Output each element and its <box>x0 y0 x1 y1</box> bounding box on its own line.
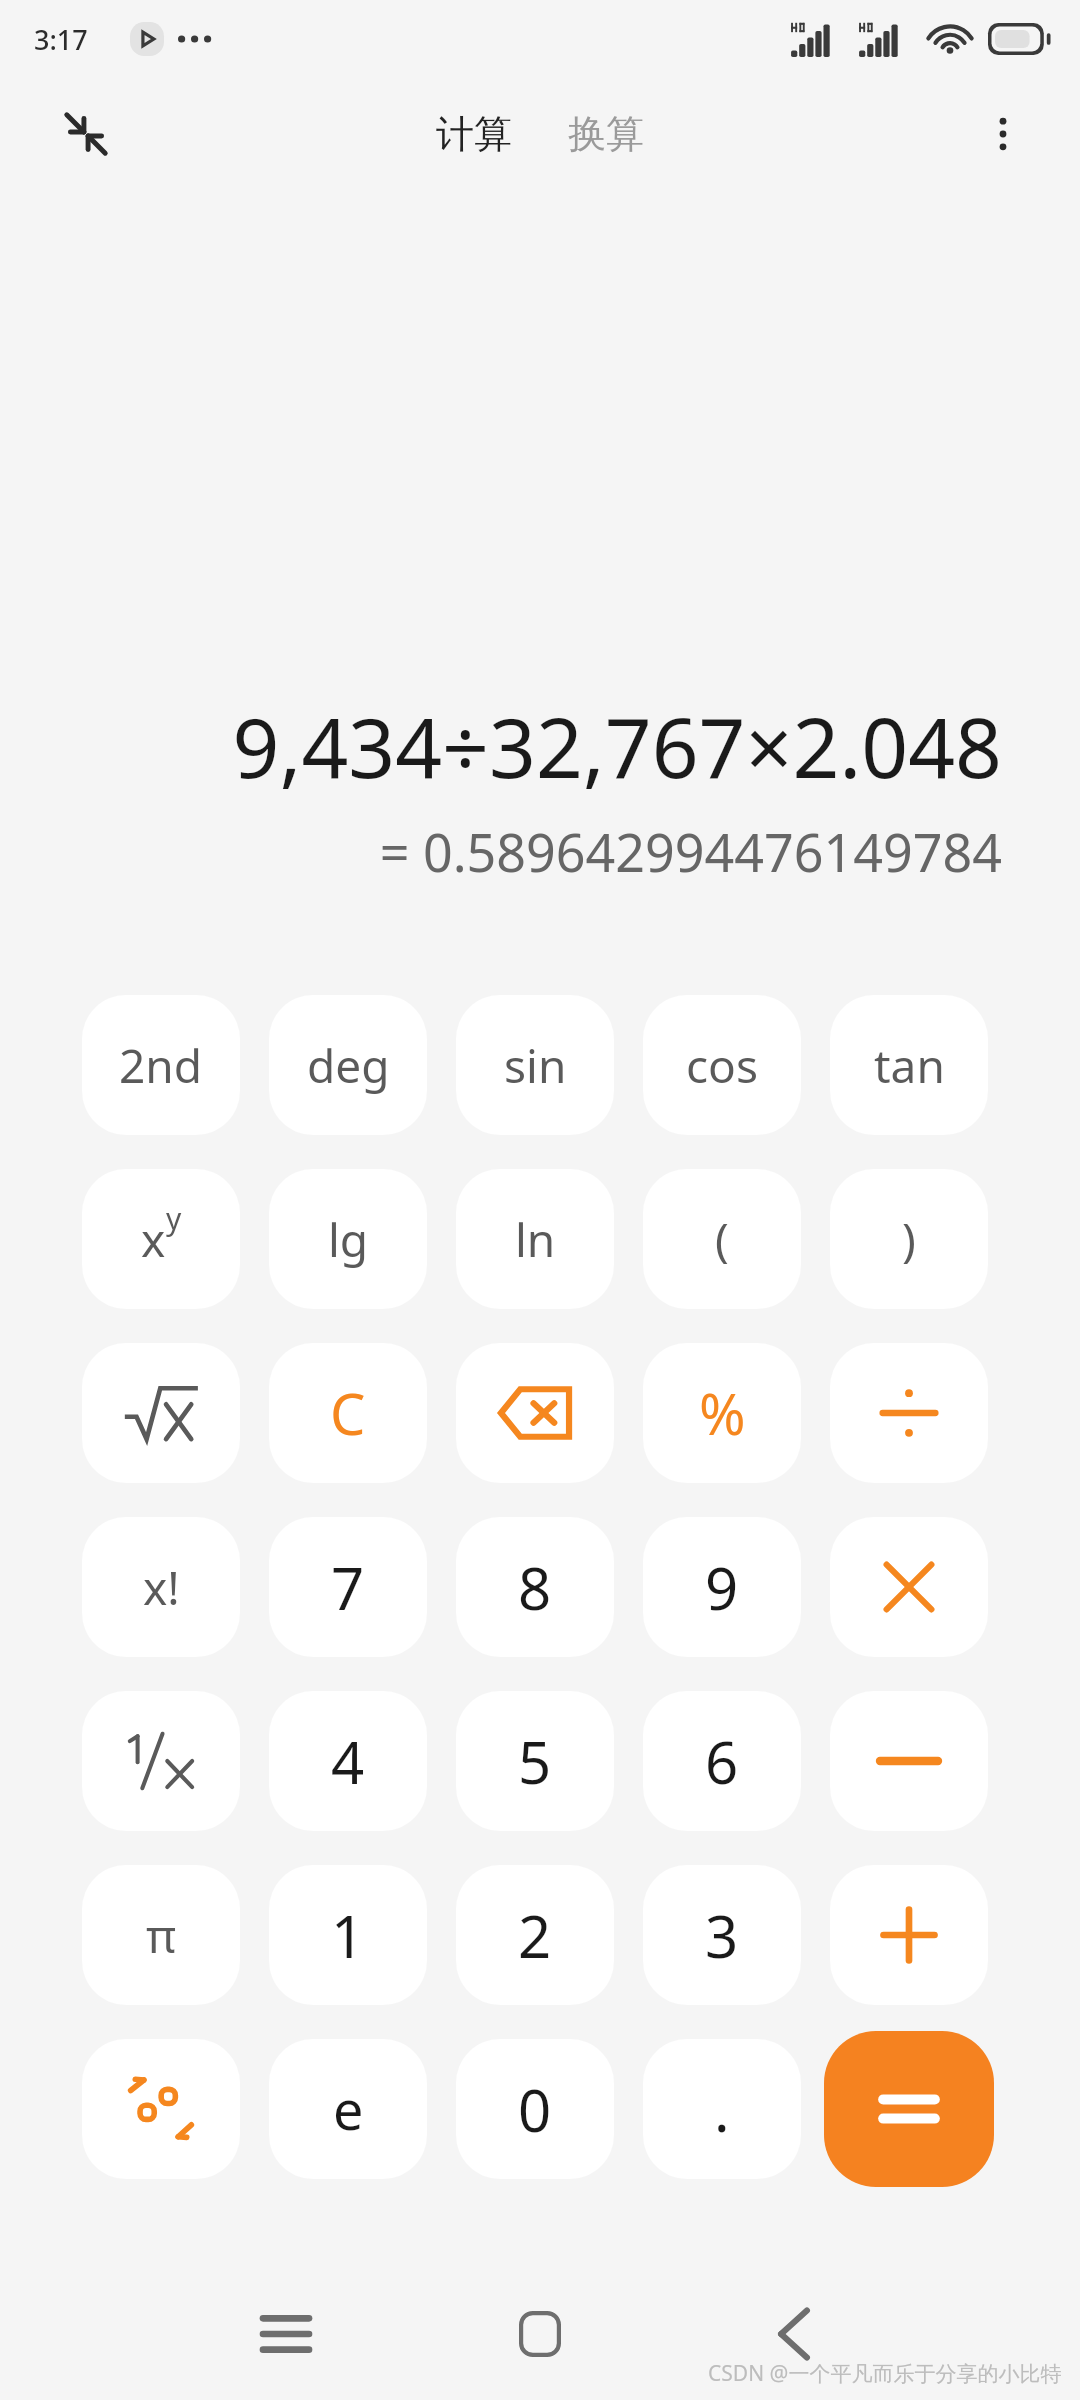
button[interactable]: deg <box>269 995 427 1135</box>
staticText: e <box>333 2072 364 2146</box>
staticText: % <box>699 1375 746 1451</box>
staticText: 3:17 <box>34 21 88 58</box>
button[interactable]: 3 <box>643 1865 801 2005</box>
staticText: cos <box>686 1034 758 1097</box>
button[interactable]: 5 <box>456 1691 614 1831</box>
button[interactable]: 8 <box>456 1517 614 1657</box>
button[interactable]: Add <box>830 1865 988 2005</box>
staticText: π <box>146 1904 177 1967</box>
button[interactable]: Divide <box>830 1343 988 1483</box>
staticText: x <box>141 1208 166 1271</box>
button[interactable]: 2nd <box>82 995 240 1135</box>
button[interactable]: sin <box>456 995 614 1135</box>
staticText: C <box>330 1375 366 1451</box>
staticText: 7 <box>331 1548 365 1627</box>
button[interactable]: Multiply <box>830 1517 988 1657</box>
staticText: = 0.589642994476149784 <box>379 816 1002 887</box>
staticText: 2nd <box>119 1034 203 1097</box>
staticText: 9 <box>705 1548 739 1627</box>
button[interactable]: tan <box>830 995 988 1135</box>
button[interactable]: x! <box>82 1517 240 1657</box>
staticText: ) <box>902 1208 916 1271</box>
staticText: 换算 <box>568 110 644 158</box>
button[interactable]: Recent apps <box>238 2286 334 2382</box>
button[interactable]: 2 <box>456 1865 614 2005</box>
staticText: 6 <box>705 1722 739 1801</box>
staticText: 3 <box>705 1896 739 1975</box>
button[interactable]: Random number <box>82 2039 240 2179</box>
staticText: lg <box>328 1208 369 1271</box>
button[interactable]: Equals <box>824 2031 994 2187</box>
button[interactable]: 1 <box>269 1865 427 2005</box>
staticText: 2 <box>518 1896 552 1975</box>
staticText: 1 <box>331 1896 365 1975</box>
button[interactable]: % <box>643 1343 801 1483</box>
button[interactable]: Backspace <box>456 1343 614 1483</box>
staticText: ( <box>715 1208 729 1271</box>
button[interactable]: Subtract <box>830 1691 988 1831</box>
button[interactable]: 换算 <box>558 104 654 164</box>
button[interactable]: ln <box>456 1169 614 1309</box>
button[interactable]: 6 <box>643 1691 801 1831</box>
button[interactable]: cos <box>643 995 801 1135</box>
staticText: ln <box>515 1208 556 1271</box>
button[interactable]: ( <box>643 1169 801 1309</box>
button[interactable]: ) <box>830 1169 988 1309</box>
staticText: deg <box>307 1034 390 1097</box>
button[interactable]: Collapse <box>42 90 130 178</box>
button[interactable]: Reciprocal <box>82 1691 240 1831</box>
staticText: y <box>166 1198 182 1239</box>
button[interactable]: Square root <box>82 1343 240 1483</box>
staticText: sin <box>504 1034 567 1097</box>
staticText: 0 <box>518 2070 552 2149</box>
staticText: tan <box>874 1034 945 1097</box>
staticText: 8 <box>518 1548 552 1627</box>
staticText: 4 <box>331 1722 365 1801</box>
button[interactable]: 计算 <box>426 104 522 164</box>
staticText: 5 <box>518 1722 552 1801</box>
button[interactable]: 0 <box>456 2039 614 2179</box>
button[interactable]: 4 <box>269 1691 427 1831</box>
staticText: 计算 <box>436 110 512 158</box>
button[interactable]: . <box>643 2039 801 2179</box>
button[interactable]: C <box>269 1343 427 1483</box>
button[interactable]: More options <box>960 91 1046 177</box>
staticText: . <box>714 2070 730 2149</box>
staticText: 9,434÷32,767×2.048 <box>232 690 1002 802</box>
button[interactable]: lg <box>269 1169 427 1309</box>
button[interactable]: Power <box>82 1169 240 1309</box>
staticText: x! <box>143 1556 180 1619</box>
button[interactable]: 7 <box>269 1517 427 1657</box>
button[interactable]: Home <box>492 2286 588 2382</box>
button[interactable]: Back <box>746 2286 842 2382</box>
button[interactable]: π <box>82 1865 240 2005</box>
button[interactable]: 9 <box>643 1517 801 1657</box>
button[interactable]: e <box>269 2039 427 2179</box>
staticText: CSDN @一个平凡而乐于分享的小比特 <box>708 2359 1062 2388</box>
